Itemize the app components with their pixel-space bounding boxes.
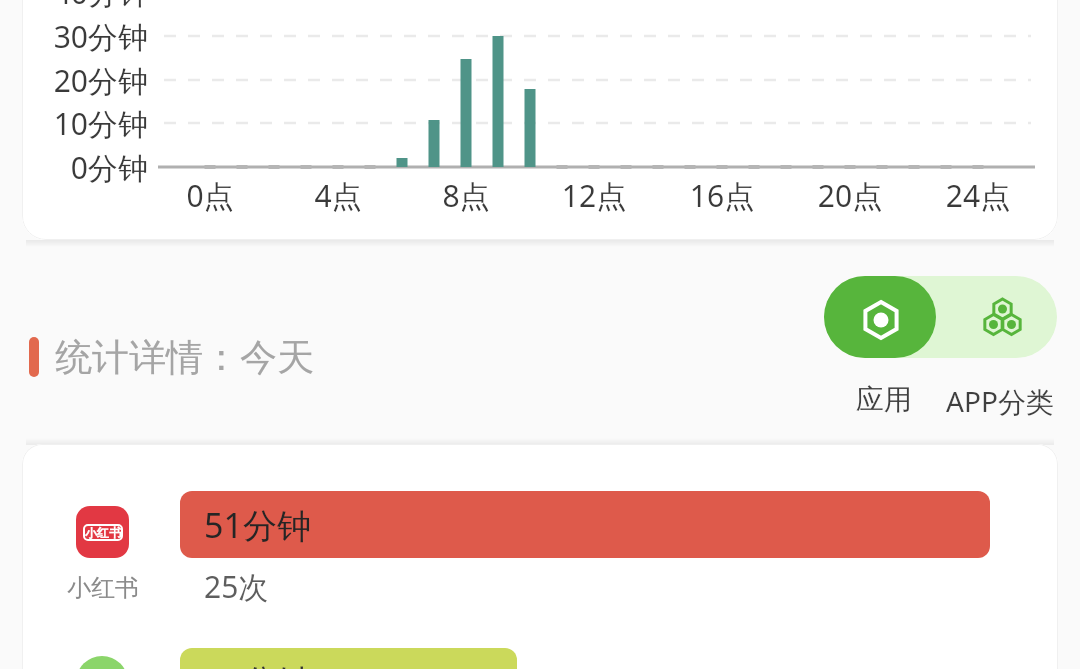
staticText: 小红书 (58, 573, 148, 603)
staticText: 小红书 (85, 525, 121, 540)
button[interactable]: APP分类 (900, 382, 1080, 420)
staticText: 30分钟 (0, 16, 148, 57)
staticText: 8点 (402, 175, 530, 216)
button[interactable]: 21分钟 (180, 648, 517, 669)
staticText: 20分钟 (0, 60, 148, 101)
staticText: 10分钟 (0, 103, 148, 144)
staticText: 12点 (530, 175, 658, 216)
button[interactable] (824, 276, 1057, 358)
staticText: 0点 (146, 175, 274, 216)
button[interactable] (978, 292, 1026, 340)
staticText: 16点 (658, 175, 786, 216)
staticText: 21分钟 (204, 658, 311, 669)
staticText: 20点 (786, 175, 914, 216)
staticText: 统计详情：今天 (55, 334, 314, 381)
button[interactable] (76, 656, 128, 669)
button[interactable]: 应用 (824, 382, 944, 417)
staticText: 0分钟 (0, 147, 148, 188)
button[interactable]: 小红书 (76, 506, 129, 558)
staticText: 4点 (274, 175, 402, 216)
button[interactable]: 51分钟 (180, 491, 990, 558)
staticText: 25次 (204, 566, 269, 607)
button[interactable] (824, 276, 936, 358)
staticText: 24点 (914, 175, 1042, 216)
staticText: 40分钟 (0, 0, 148, 13)
staticText: 51分钟 (204, 502, 311, 548)
